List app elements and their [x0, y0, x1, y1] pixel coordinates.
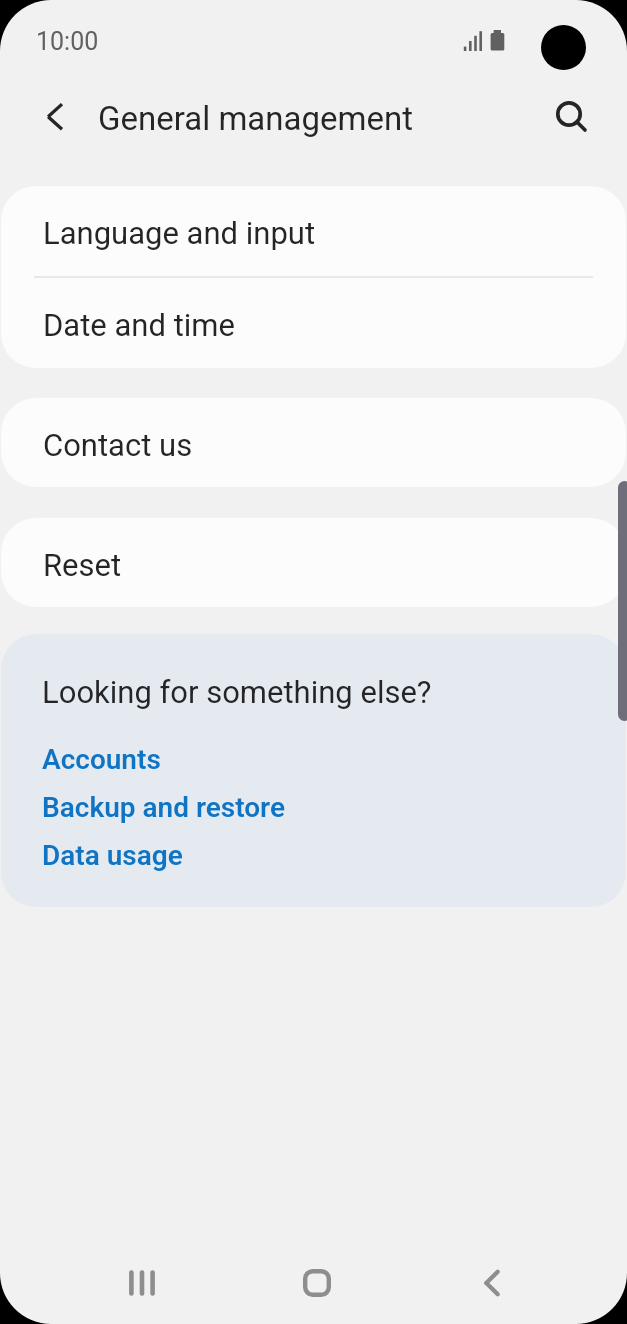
button[interactable]: Accounts	[1, 735, 626, 783]
button[interactable]: Search	[546, 91, 592, 137]
button[interactable]: Contact us	[1, 398, 626, 487]
staticText: Contact us	[43, 427, 193, 463]
staticText: General management	[98, 99, 413, 138]
button[interactable]: Backup and restore	[1, 783, 626, 831]
staticText: Date and time	[43, 307, 235, 343]
button[interactable]: Language and input	[1, 186, 626, 276]
button[interactable]: Navigate up	[24, 94, 70, 140]
staticText: Data usage	[42, 839, 183, 872]
button[interactable]: Back	[450, 1241, 534, 1324]
staticText: Looking for something else?	[42, 674, 432, 710]
staticText: 10:00	[36, 27, 99, 56]
button[interactable]: Home	[275, 1241, 359, 1324]
staticText: Language and input	[43, 215, 316, 251]
staticText: Reset	[43, 547, 122, 583]
button[interactable]: Data usage	[1, 831, 626, 879]
button[interactable]: Recent apps	[100, 1241, 184, 1324]
staticText: Backup and restore	[42, 791, 286, 824]
button[interactable]: Date and time	[1, 278, 626, 368]
button[interactable]: Reset	[1, 518, 626, 607]
staticText: Accounts	[42, 743, 161, 776]
